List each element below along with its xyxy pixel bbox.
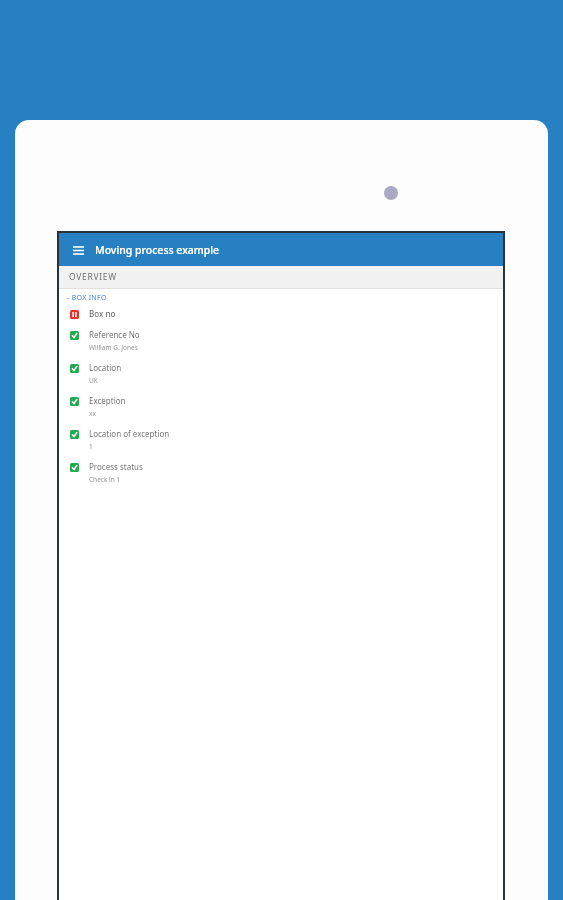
staticText: Exception	[89, 395, 126, 406]
button[interactable]: Attention required	[59, 306, 503, 327]
staticText: 1	[89, 442, 93, 451]
other: Completed	[70, 430, 79, 439]
button[interactable]: Open navigation menu	[69, 241, 87, 259]
staticText: Location	[89, 362, 122, 373]
staticText: Moving process example	[95, 243, 220, 257]
other: Attention required	[70, 310, 79, 319]
staticText: UK	[89, 376, 98, 385]
button[interactable]: Completed	[59, 459, 503, 492]
staticText: Location of exception	[89, 428, 170, 439]
other: Completed	[70, 397, 79, 406]
button[interactable]: Completed	[59, 426, 503, 459]
staticText: Box no	[89, 308, 116, 319]
other: Completed	[70, 331, 79, 340]
button[interactable]: Completed	[59, 327, 503, 360]
button[interactable]: Completed	[59, 360, 503, 393]
staticText: Reference No	[89, 329, 140, 340]
button[interactable]: - BOX INFO	[59, 289, 503, 306]
staticText: - BOX INFO	[67, 293, 107, 303]
staticText: Process status	[89, 461, 143, 472]
staticText: William G. Jones	[89, 343, 138, 352]
staticText: xx	[89, 409, 96, 418]
button[interactable]: Open navigation menu	[59, 233, 503, 266]
other: Completed	[70, 364, 79, 373]
other: Completed	[70, 463, 79, 472]
staticText: Check in 1	[89, 475, 121, 484]
button[interactable]: OVERVIEW	[59, 266, 503, 288]
button[interactable]: Completed	[59, 393, 503, 426]
staticText: OVERVIEW	[69, 271, 117, 283]
